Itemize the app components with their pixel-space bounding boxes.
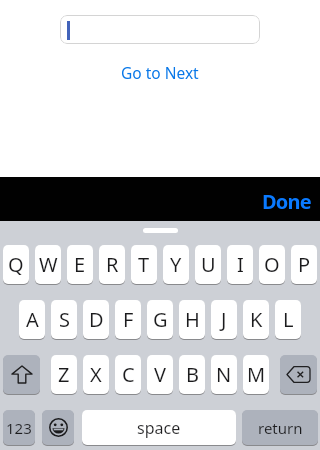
staticText: B [186, 361, 199, 388]
staticText: P [298, 251, 311, 278]
staticText: W [39, 251, 58, 278]
button[interactable] [60, 15, 260, 44]
button[interactable]: C [115, 355, 141, 394]
button[interactable]: G [147, 300, 173, 339]
staticText: R [106, 251, 119, 278]
button[interactable]: P [291, 245, 317, 284]
staticText: Y [170, 251, 182, 278]
staticText: N [216, 361, 232, 388]
staticText: H [185, 306, 200, 333]
staticText: M [247, 361, 266, 388]
staticText: L [283, 306, 294, 333]
button[interactable]: I [227, 245, 253, 284]
staticText: X [90, 361, 102, 388]
button[interactable]: B [179, 355, 205, 394]
staticText: C [122, 361, 135, 388]
staticText: T [138, 251, 150, 278]
button[interactable]: K [243, 300, 269, 339]
staticText: K [250, 306, 263, 333]
staticText: O [264, 251, 280, 278]
staticText: G [153, 306, 168, 333]
button[interactable]: W [35, 245, 61, 284]
staticText: Go to Next [121, 62, 199, 83]
button[interactable]: Y [163, 245, 189, 284]
staticText: E [74, 251, 86, 278]
button[interactable]: D [83, 300, 109, 339]
staticText: F [123, 306, 134, 333]
button[interactable]: N [211, 355, 237, 394]
button[interactable]: S [51, 300, 77, 339]
staticText: return [258, 418, 303, 438]
button[interactable] [42, 410, 74, 445]
staticText: 123 [6, 418, 32, 438]
button[interactable]: space [82, 410, 236, 445]
staticText: Q [8, 251, 24, 278]
button[interactable]: E [67, 245, 93, 284]
button[interactable]: 123 [3, 410, 35, 445]
button[interactable]: J [211, 300, 237, 339]
button[interactable]: Z [51, 355, 77, 394]
button[interactable]: M [243, 355, 269, 394]
staticText: D [89, 306, 104, 333]
staticText: S [59, 306, 70, 333]
button[interactable]: F [115, 300, 141, 339]
button[interactable]: T [131, 245, 157, 284]
button[interactable]: H [179, 300, 205, 339]
button[interactable] [3, 355, 40, 394]
staticText: U [201, 251, 216, 278]
staticText: Z [58, 361, 70, 388]
button[interactable]: return [242, 410, 318, 445]
button[interactable]: L [275, 300, 301, 339]
staticText: V [154, 361, 166, 388]
button[interactable]: R [99, 245, 125, 284]
button[interactable]: A [19, 300, 45, 339]
button[interactable]: X [83, 355, 109, 394]
button[interactable]: O [259, 245, 285, 284]
staticText: A [26, 306, 39, 333]
button[interactable]: Done [262, 188, 311, 215]
button[interactable]: U [195, 245, 221, 284]
staticText: I [237, 251, 244, 278]
button[interactable]: V [147, 355, 173, 394]
button[interactable] [280, 355, 317, 394]
staticText: J [221, 306, 227, 333]
staticText: Done [262, 188, 311, 215]
button[interactable]: Go to Next [121, 62, 199, 83]
staticText: space [137, 417, 181, 439]
button[interactable]: Q [3, 245, 29, 284]
